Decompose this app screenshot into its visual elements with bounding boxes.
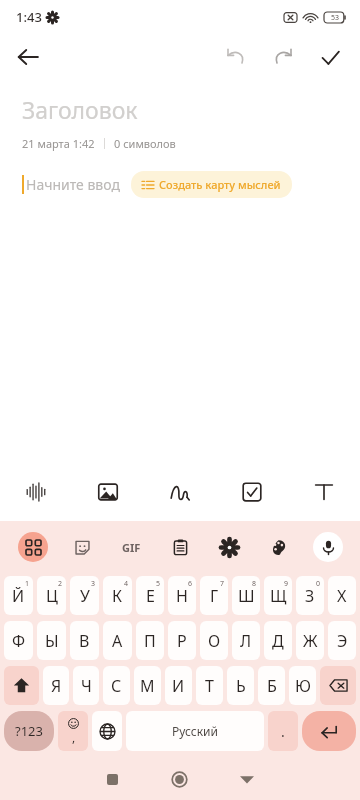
button[interactable]: Е (136, 576, 164, 615)
staticText: Начните ввод (26, 175, 120, 194)
button[interactable]: В (70, 621, 99, 660)
button[interactable]: Ь (227, 666, 254, 705)
button[interactable]: Б (258, 666, 285, 705)
staticText: У (80, 585, 90, 607)
staticText: Создать карту мыслей (159, 177, 281, 192)
staticText: Л (240, 630, 252, 652)
staticText: 0 (316, 579, 321, 589)
button[interactable]: Ж (296, 621, 324, 660)
button[interactable]: Settings (205, 521, 254, 573)
staticText: 1:43 (16, 8, 42, 26)
staticText: ?123 (15, 722, 43, 740)
button[interactable]: . (268, 711, 298, 751)
button[interactable]: Backspace (320, 666, 356, 705)
button[interactable]: Image (72, 463, 144, 521)
button[interactable]: Ф (4, 621, 33, 660)
staticText: Й (12, 585, 25, 607)
button[interactable]: Change language (92, 711, 122, 751)
button[interactable]: Создать карту мыслей (131, 171, 292, 198)
button[interactable]: Voice input (303, 521, 352, 573)
button[interactable]: Undo (216, 37, 256, 77)
staticText: 2 (58, 579, 63, 589)
button[interactable]: Stickers (58, 521, 107, 573)
staticText: Щ (270, 585, 287, 607)
button[interactable]: Text style (288, 463, 360, 521)
staticText: Г (210, 585, 219, 607)
button[interactable]: Draw (144, 463, 216, 521)
button[interactable]: О (200, 621, 228, 660)
button[interactable]: Д (264, 621, 292, 660)
staticText: Т (205, 675, 214, 697)
button[interactable]: Hide keyboard (213, 758, 280, 800)
button[interactable]: И (165, 666, 192, 705)
staticText: Ь (236, 675, 246, 697)
button[interactable]: Home (146, 758, 213, 800)
button[interactable]: Audio (0, 463, 72, 521)
staticText: Д (272, 630, 284, 652)
staticText: 6 (188, 579, 193, 589)
staticText: О (208, 630, 221, 652)
button[interactable]: З (296, 576, 324, 615)
button[interactable]: Х (328, 576, 356, 615)
staticText: М (140, 675, 155, 697)
button[interactable]: Н (168, 576, 196, 615)
button[interactable]: Enter (302, 711, 356, 751)
button[interactable]: Checklist (216, 463, 288, 521)
staticText: Русский (172, 723, 218, 739)
staticText: Н (176, 585, 188, 607)
staticText: Ж (303, 630, 318, 652)
staticText: К (112, 585, 123, 607)
staticText: 5 (156, 579, 161, 589)
staticText: Ш (238, 585, 255, 607)
staticText: З (305, 585, 315, 607)
staticText: Я (51, 675, 62, 697)
staticText: 8 (252, 579, 257, 589)
button[interactable]: GIF (107, 521, 156, 573)
button[interactable]: Ю (289, 666, 316, 705)
button[interactable]: С (103, 666, 130, 705)
button[interactable]: Л (232, 621, 260, 660)
button[interactable]: ?123 (4, 711, 54, 751)
staticText: Х (337, 585, 347, 607)
button[interactable]: Щ (264, 576, 292, 615)
staticText: А (112, 630, 123, 652)
button[interactable]: Русский (126, 711, 264, 751)
button[interactable]: Redo (263, 37, 303, 77)
staticText: П (144, 630, 156, 652)
button[interactable]: А (103, 621, 132, 660)
button[interactable]: Т (196, 666, 223, 705)
staticText: С (111, 675, 122, 697)
staticText: 4 (124, 579, 129, 589)
button[interactable]: Г (200, 576, 228, 615)
button[interactable]: Apps (8, 521, 58, 573)
button[interactable]: Back (8, 37, 48, 77)
button[interactable]: Й (4, 576, 33, 615)
staticText: Е (146, 585, 155, 607)
button[interactable]: К (103, 576, 132, 615)
staticText: И (172, 675, 185, 697)
button[interactable]: У (70, 576, 99, 615)
staticText: 53 (331, 13, 340, 23)
button[interactable]: Done (310, 37, 350, 77)
button[interactable]: Ч (73, 666, 99, 705)
staticText: 7 (220, 579, 225, 589)
button[interactable]: Ц (37, 576, 66, 615)
staticText: Заголовок (22, 94, 138, 125)
button[interactable]: Я (43, 666, 69, 705)
button[interactable]: Ы (37, 621, 66, 660)
button[interactable]: Recents (79, 758, 146, 800)
button[interactable]: Р (168, 621, 196, 660)
staticText: Ф (12, 630, 26, 652)
button[interactable]: Clipboard (156, 521, 205, 573)
button[interactable]: Theme (254, 521, 303, 573)
button[interactable]: Э (328, 621, 356, 660)
button[interactable]: Emoji and comma (58, 711, 88, 751)
staticText: Э (337, 630, 348, 652)
staticText: GIF (122, 540, 141, 555)
button[interactable]: Shift (4, 666, 39, 705)
staticText: 9 (284, 579, 289, 589)
button[interactable]: М (134, 666, 161, 705)
button[interactable]: П (136, 621, 164, 660)
staticText: В (79, 630, 90, 652)
button[interactable]: Ш (232, 576, 260, 615)
